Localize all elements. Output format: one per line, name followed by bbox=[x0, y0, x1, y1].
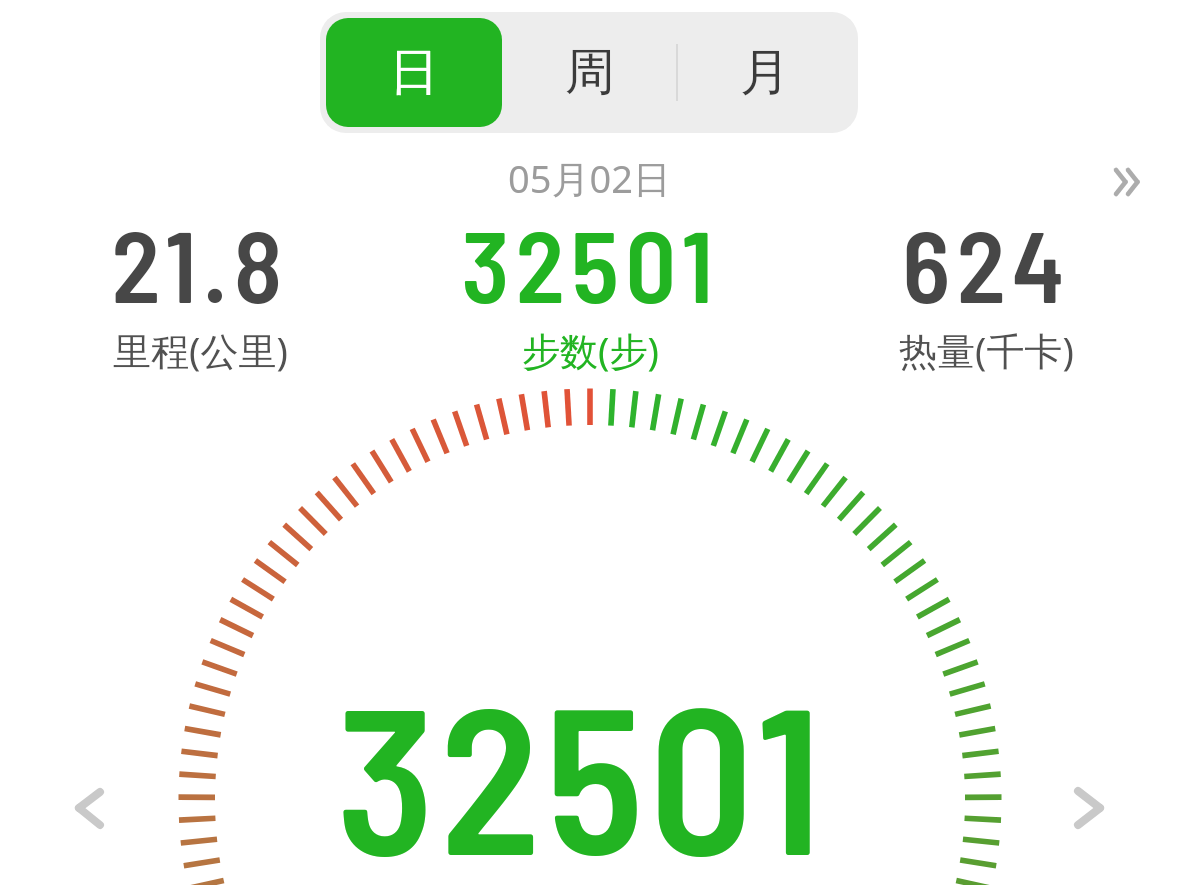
button[interactable]: 月 bbox=[677, 18, 852, 127]
staticText: 周 bbox=[565, 41, 615, 104]
button[interactable]: 05月02日 bbox=[0, 152, 1179, 202]
staticText: 21.8 bbox=[111, 203, 289, 313]
button[interactable] bbox=[60, 780, 116, 836]
staticText: 步数(步) bbox=[522, 324, 659, 374]
staticText: 月 bbox=[740, 41, 790, 104]
staticText: 32501 bbox=[336, 650, 827, 885]
staticText: 32501 bbox=[461, 203, 720, 313]
staticText: 624 bbox=[902, 203, 1071, 313]
staticText: 里程(公里) bbox=[113, 324, 288, 374]
staticText: 05月02日 bbox=[508, 152, 671, 202]
staticText: 日 bbox=[389, 41, 439, 104]
button[interactable] bbox=[1062, 780, 1118, 836]
button[interactable]: 日 bbox=[326, 18, 502, 127]
button[interactable] bbox=[1110, 168, 1144, 196]
button[interactable]: 周 bbox=[502, 18, 677, 127]
staticText: 热量(千卡) bbox=[899, 324, 1074, 374]
